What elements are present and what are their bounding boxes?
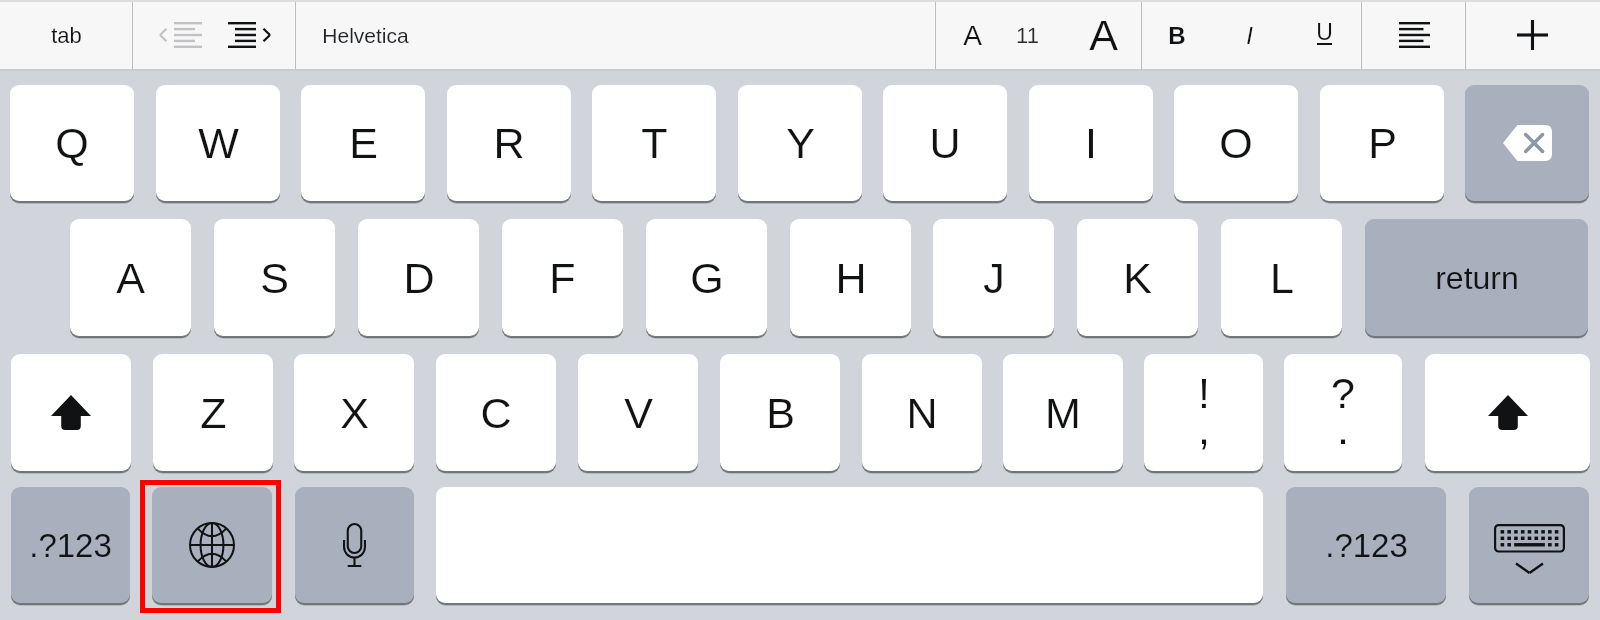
button[interactable]: .?123 — [11, 487, 130, 603]
button[interactable]: K — [1077, 219, 1198, 336]
staticText: O — [1219, 119, 1253, 167]
button[interactable]: ! — [1144, 354, 1263, 471]
button[interactable]: H — [790, 219, 911, 336]
staticText: S — [260, 254, 289, 302]
button[interactable]: G — [646, 219, 767, 336]
staticText: I — [1246, 22, 1253, 49]
staticText: H — [835, 254, 867, 302]
staticText: K — [1123, 254, 1152, 302]
staticText: B — [1168, 22, 1186, 49]
staticText: W — [198, 119, 239, 167]
button[interactable]: Shift — [11, 354, 131, 471]
button[interactable]: Z — [153, 354, 273, 471]
button[interactable]: Dictate — [295, 487, 414, 603]
button[interactable]: Hide keyboard — [1469, 487, 1589, 603]
staticText: X — [340, 389, 369, 437]
staticText: tab — [51, 23, 82, 48]
button[interactable]: P — [1320, 85, 1444, 201]
button[interactable]: tab — [0, 0, 132, 68]
button[interactable]: N — [862, 354, 982, 471]
staticText: T — [641, 119, 668, 167]
staticText: U — [1316, 19, 1333, 45]
staticText: R — [493, 119, 525, 167]
staticText: M — [1045, 389, 1081, 437]
button[interactable]: Helvetica — [296, 0, 936, 68]
staticText: 11 — [1016, 23, 1039, 48]
staticText: Helvetica — [322, 24, 409, 47]
button[interactable]: return — [1365, 219, 1588, 336]
button[interactable]: Y — [738, 85, 862, 201]
staticText: J — [983, 254, 1005, 302]
staticText: Z — [200, 389, 227, 437]
button[interactable]: 11 — [999, 0, 1055, 68]
button[interactable]: X — [294, 354, 414, 471]
staticText: A — [116, 254, 145, 302]
staticText: E — [349, 119, 378, 167]
staticText: C — [480, 389, 512, 437]
button[interactable]: A — [1065, 0, 1141, 68]
button[interactable]: S — [214, 219, 335, 336]
button[interactable]: D — [358, 219, 479, 336]
button[interactable]: J — [933, 219, 1054, 336]
button[interactable]: I — [1029, 85, 1153, 201]
button[interactable]: E — [301, 85, 425, 201]
staticText: ? — [1331, 369, 1355, 417]
staticText: P — [1368, 119, 1397, 167]
button[interactable]: R — [447, 85, 571, 201]
staticText: A — [1089, 11, 1118, 59]
staticText: U — [929, 119, 961, 167]
button[interactable]: T — [592, 85, 716, 201]
staticText: .?123 — [29, 527, 112, 564]
button[interactable]: C — [436, 354, 556, 471]
button[interactable]: Increase indent — [214, 0, 295, 68]
staticText: F — [549, 254, 576, 302]
button[interactable]: U — [883, 85, 1007, 201]
button[interactable]: Delete — [1465, 85, 1589, 201]
button[interactable]: ? — [1284, 354, 1402, 471]
button[interactable]: U — [1288, 0, 1362, 68]
staticText: ! — [1198, 369, 1210, 417]
button[interactable]: A — [937, 0, 1009, 68]
staticText: Q — [55, 119, 89, 167]
staticText: L — [1270, 254, 1294, 302]
button[interactable]: B — [720, 354, 840, 471]
staticText: .?123 — [1325, 527, 1408, 564]
staticText: , — [1198, 405, 1210, 453]
staticText: N — [906, 389, 938, 437]
button[interactable]: L — [1221, 219, 1342, 336]
button[interactable]: Insert — [1466, 0, 1600, 68]
staticText: Y — [786, 119, 815, 167]
staticText: D — [403, 254, 435, 302]
staticText: V — [624, 389, 653, 437]
button[interactable]: Q — [10, 85, 134, 201]
button[interactable]: O — [1174, 85, 1298, 201]
button[interactable]: Decrease indent — [133, 0, 214, 68]
staticText: G — [690, 254, 724, 302]
staticText: B — [766, 389, 795, 437]
button[interactable]: I — [1214, 0, 1286, 68]
button[interactable]: V — [578, 354, 698, 471]
button[interactable]: .?123 — [1286, 487, 1446, 603]
button[interactable]: A — [70, 219, 191, 336]
button[interactable]: W — [156, 85, 280, 201]
button[interactable]: Shift — [1425, 354, 1590, 471]
button[interactable]: Text alignment — [1363, 0, 1465, 68]
staticText: . — [1337, 405, 1349, 453]
staticText: A — [963, 20, 982, 51]
button[interactable]: B — [1142, 0, 1214, 68]
staticText: return — [1435, 260, 1519, 296]
button[interactable]: Change keyboard language — [152, 487, 272, 603]
button[interactable]: M — [1003, 354, 1123, 471]
staticText: I — [1085, 119, 1097, 167]
button[interactable]: F — [502, 219, 623, 336]
